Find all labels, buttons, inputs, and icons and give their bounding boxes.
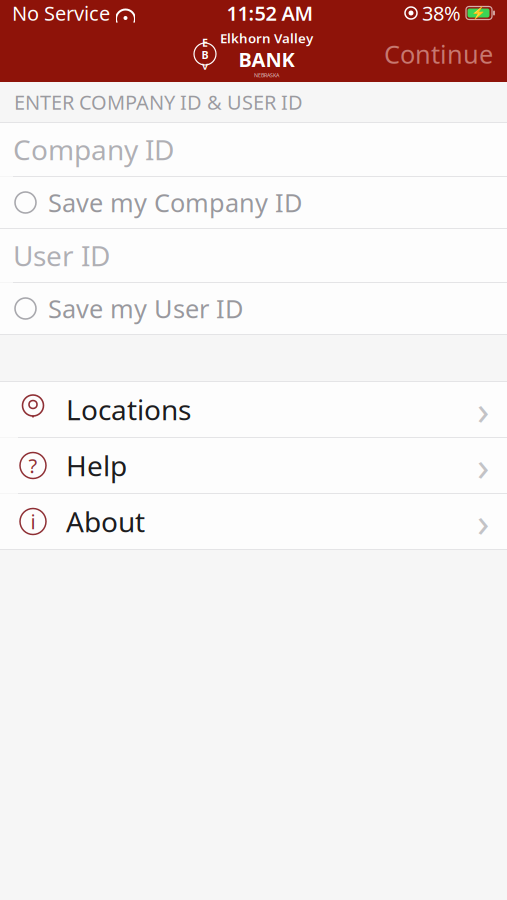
staticText: ⚡ (471, 6, 486, 20)
staticText: Elkhorn Valley (220, 29, 313, 47)
staticText: About (66, 503, 145, 540)
staticText: Company ID (13, 131, 174, 168)
staticText: User ID (13, 237, 110, 274)
staticText: ENTER COMPANY ID & USER ID (14, 89, 303, 115)
staticText: 11:52 AM (226, 0, 313, 26)
staticText: ? (28, 452, 37, 479)
button[interactable]: ? (0, 438, 507, 493)
button[interactable]: i (0, 494, 507, 549)
button[interactable]: Save my Company ID (0, 177, 507, 228)
staticText: 38% (422, 0, 461, 26)
staticText: Save my User ID (48, 292, 243, 325)
button[interactable]: Locations (0, 382, 507, 437)
staticText: NEBRASKA (254, 72, 279, 79)
button[interactable]: Save my User ID (0, 283, 507, 334)
staticText: Save my Company ID (48, 186, 302, 219)
staticText: › (477, 383, 489, 436)
staticText: Continue (384, 37, 493, 71)
staticText: No Service (12, 0, 110, 26)
staticText: V (202, 60, 208, 72)
staticText: › (477, 439, 489, 492)
staticText: i (30, 508, 35, 535)
staticText: B (201, 48, 208, 62)
staticText: Help (66, 447, 127, 484)
button[interactable]: Continue (370, 29, 507, 79)
staticText: › (477, 495, 489, 548)
staticText: BANK (238, 46, 294, 73)
staticText: Locations (66, 391, 191, 428)
staticText: E (202, 36, 208, 50)
